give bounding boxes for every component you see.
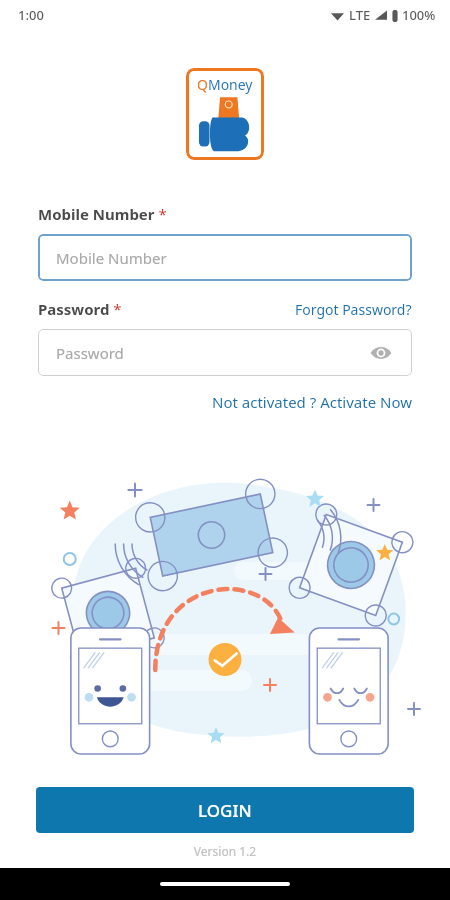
staticText: 1:00: [18, 6, 44, 24]
staticText: Mobile Number: [56, 248, 167, 268]
staticText: Version 1.2: [0, 843, 450, 859]
staticText: Mobile Number *: [38, 204, 167, 224]
staticText: QMoney: [197, 75, 253, 94]
staticText: Forgot Password?: [295, 300, 412, 319]
staticText: Password *: [38, 299, 122, 319]
button[interactable]: Mobile Number: [38, 234, 412, 281]
staticText: LTE: [349, 6, 371, 24]
button[interactable]: Not activated ? Activate Now: [212, 392, 412, 412]
button[interactable]: Password: [38, 329, 412, 376]
staticText: 100%: [402, 6, 436, 24]
staticText: Password: [56, 343, 124, 363]
staticText: Not activated ? Activate Now: [212, 392, 412, 412]
button[interactable]: LOGIN: [36, 787, 414, 833]
button[interactable]: Show password: [368, 340, 394, 366]
button[interactable]: Forgot Password?: [295, 300, 412, 319]
staticText: LOGIN: [198, 799, 252, 822]
button[interactable]: QMoney logo: [186, 68, 264, 160]
